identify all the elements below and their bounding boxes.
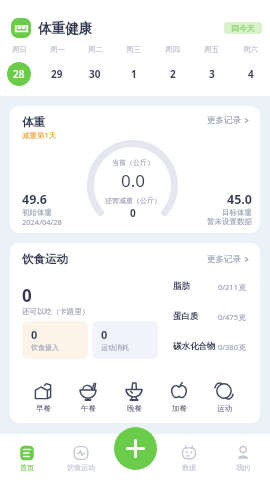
staticText: 回今天	[231, 23, 255, 33]
button[interactable]: 午餐	[73, 381, 103, 413]
button[interactable]: 早餐	[28, 381, 58, 413]
staticText: 0	[22, 284, 32, 307]
button[interactable]: 添加记录	[114, 427, 157, 470]
staticText: 数据	[182, 463, 196, 472]
staticText: 周日	[12, 45, 27, 54]
button[interactable]: 运动	[209, 381, 239, 413]
staticText: 周一	[50, 45, 65, 54]
button[interactable]: 1	[122, 62, 146, 86]
staticText: 0	[130, 206, 136, 220]
staticText: 2024/04/28	[22, 217, 62, 227]
staticText: 周六	[243, 45, 258, 54]
staticText: 运动	[217, 404, 232, 413]
button[interactable]: 饮食运动	[54, 443, 108, 472]
button[interactable]: 我的	[216, 443, 270, 472]
staticText: 碳水化合物	[173, 341, 216, 352]
button[interactable]: 2	[161, 62, 185, 86]
button[interactable]: 数据	[162, 443, 216, 472]
button[interactable]: 29	[45, 62, 69, 86]
staticText: 周三	[126, 45, 141, 54]
staticText: 蛋白质	[173, 311, 199, 322]
staticText: 目标体重	[222, 208, 252, 217]
staticText: 当前（公斤）	[112, 158, 154, 167]
staticText: 晚餐	[127, 404, 142, 413]
staticText: 更多记录	[207, 254, 241, 265]
staticText: 0/211克	[218, 282, 246, 292]
staticText: 暂未设置数据	[207, 217, 252, 226]
staticText: 49.6	[22, 191, 47, 208]
staticText: 29	[51, 67, 63, 81]
staticText: 周四	[165, 45, 180, 54]
staticText: 28	[13, 67, 25, 81]
staticText: 午餐	[81, 404, 96, 413]
button[interactable]: 0	[22, 321, 88, 359]
button[interactable]: 4	[239, 62, 263, 86]
staticText: 4	[248, 67, 254, 81]
staticText: 周二	[88, 45, 103, 54]
staticText: 饮食运动	[22, 252, 68, 266]
staticText: 还需减重（公斤）	[105, 196, 161, 205]
staticText: 首页	[20, 463, 34, 472]
button[interactable]: 3	[200, 62, 224, 86]
staticText: 脂肪	[173, 281, 190, 292]
button[interactable]: 0	[92, 321, 158, 359]
staticText: 周五	[204, 45, 219, 54]
staticText: 饮食摄入	[31, 343, 59, 352]
staticText: 体重	[22, 115, 45, 129]
staticText: 3	[209, 67, 215, 81]
button[interactable]: 更多记录	[207, 115, 249, 126]
staticText: 0.0	[121, 169, 146, 192]
staticText: 减重第1天	[22, 130, 57, 140]
staticText: 饮食运动	[67, 463, 95, 472]
button[interactable]: 加餐	[164, 381, 194, 413]
button[interactable]: 30	[83, 62, 107, 86]
button[interactable]: 首页	[0, 443, 54, 472]
staticText: 早餐	[36, 404, 51, 413]
staticText: 体重健康	[38, 20, 92, 37]
staticText: 初始体重	[22, 208, 52, 217]
staticText: 还可以吃（卡路里）	[22, 307, 90, 316]
staticText: 1	[131, 67, 137, 81]
staticText: 0/380克	[218, 342, 246, 352]
staticText: 0/475克	[218, 312, 246, 322]
button[interactable]: 更多记录	[207, 254, 249, 265]
staticText: 运动消耗	[101, 343, 129, 352]
staticText: 我的	[236, 463, 250, 472]
staticText: 2	[170, 67, 176, 81]
staticText: 加餐	[172, 404, 187, 413]
staticText: 更多记录	[207, 115, 241, 126]
staticText: 0	[101, 327, 108, 342]
button[interactable]: 晚餐	[119, 381, 149, 413]
button[interactable]: 回今天	[224, 22, 262, 34]
button[interactable]: 28	[7, 62, 31, 86]
staticText: 0	[31, 327, 38, 342]
staticText: 45.0	[227, 191, 252, 208]
staticText: 30	[89, 67, 101, 81]
